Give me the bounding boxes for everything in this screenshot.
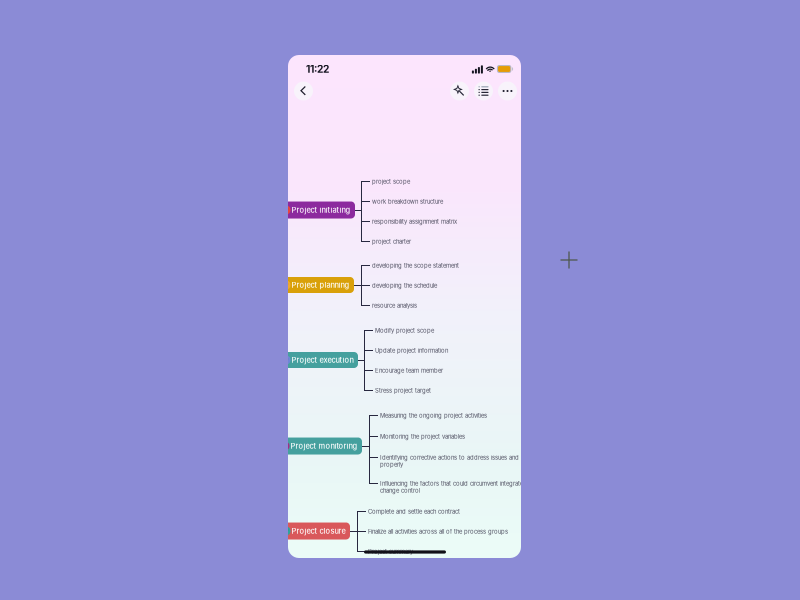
staticText: Monitoring the project variables <box>380 433 465 440</box>
staticText: project charter <box>372 238 411 245</box>
button[interactable]: Back <box>294 81 313 100</box>
staticText: Project summary <box>368 548 413 555</box>
button[interactable]: More <box>498 81 517 100</box>
staticText: 11:22 <box>306 63 329 75</box>
staticText: Modify project scope <box>375 327 434 334</box>
button[interactable]: Project execution <box>279 352 358 368</box>
staticText: developing the scope statement <box>372 262 459 269</box>
button[interactable]: Project closure <box>279 522 350 539</box>
staticText: Influencing the factors that could circu… <box>380 480 527 494</box>
staticText: Stress project target <box>375 387 431 394</box>
staticText: responsibility assignment matrix <box>372 218 457 225</box>
staticText: Complete and settle each contract <box>368 508 460 515</box>
button[interactable]: Outline <box>474 81 493 100</box>
staticText: work breakdown structure <box>372 198 443 205</box>
staticText: developing the schedule <box>372 282 437 289</box>
staticText: Project planning <box>291 280 349 289</box>
staticText: Identifying corrective actions to addres… <box>380 454 533 468</box>
button[interactable]: Project planning <box>279 277 354 293</box>
button[interactable]: Project initiating <box>279 201 355 218</box>
staticText: Project initiating <box>291 205 350 214</box>
staticText: Project closure <box>291 526 345 535</box>
staticText: Project monitoring <box>290 441 357 450</box>
button[interactable]: AI assist <box>450 81 469 100</box>
staticText: Measuring the ongoing project activities <box>380 412 487 419</box>
staticText: Update project information <box>375 347 448 354</box>
staticText: Encourage team member <box>375 367 443 374</box>
staticText: resource analysis <box>372 302 417 309</box>
button[interactable]: Project monitoring <box>278 437 362 454</box>
staticText: project scope <box>372 178 410 185</box>
staticText: Project execution <box>291 355 353 364</box>
staticText: Finalize all activities across all of th… <box>368 528 508 535</box>
